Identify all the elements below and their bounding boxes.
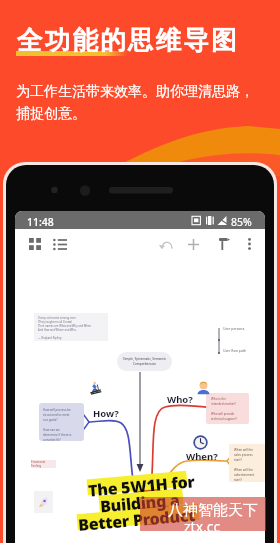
button[interactable]: Format style: [213, 233, 235, 255]
staticText: 为工作生活带来效率。助你理清思路， 捕捉创意。: [16, 83, 254, 122]
staticText: 全功能的思维导图: [17, 24, 239, 56]
staticText: Who?: [167, 393, 193, 406]
button[interactable]: How will process be structured to meet o…: [39, 403, 84, 441]
button[interactable]: More options: [241, 233, 257, 255]
staticText: 八神智能天下: [168, 501, 258, 520]
staticText: The 5W1H for: [87, 470, 196, 502]
staticText: When?: [186, 450, 218, 463]
staticText: Simple, Systematic, Semantic Comprehensi…: [123, 357, 166, 366]
staticText: User flow path: [223, 348, 247, 353]
staticText: How will process be structured to meet o…: [43, 408, 72, 441]
button[interactable]: Undo: [155, 233, 177, 255]
button[interactable]: List view: [49, 233, 71, 255]
staticText: Better Product: [77, 504, 197, 536]
staticText: Building a: [99, 489, 181, 517]
staticText: User persona: [223, 326, 245, 331]
button[interactable]: When will the sales process start? When …: [229, 444, 265, 482]
staticText: 11:48: [27, 215, 54, 229]
staticText: Emotional Feeling: [31, 460, 56, 468]
staticText: When will the sales process start? When …: [234, 448, 255, 481]
staticText: I keep six honest serving-men (They taug…: [38, 316, 92, 340]
button[interactable]: Who is the intended market? Who will pro…: [206, 393, 249, 424]
button[interactable]: Grid view: [24, 233, 46, 255]
button[interactable]: Simple, Systematic, Semantic Comprehensi…: [117, 352, 172, 371]
button[interactable]: Add node: [182, 233, 204, 255]
staticText: ztx.cc: [184, 517, 221, 536]
staticText: Who is the intended market? Who will pro…: [211, 397, 237, 421]
staticText: 85%: [231, 215, 252, 229]
staticText: How?: [93, 407, 119, 420]
